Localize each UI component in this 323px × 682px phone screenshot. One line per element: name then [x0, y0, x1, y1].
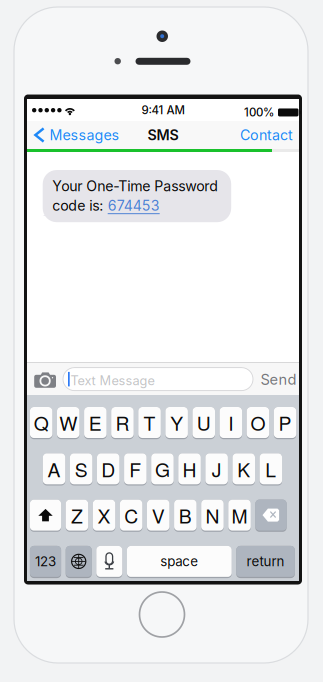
staticText: H — [183, 455, 197, 483]
button[interactable]: Messages — [27, 121, 125, 149]
staticText: C — [124, 501, 138, 529]
button[interactable]: Z — [66, 500, 88, 532]
button[interactable]: Y — [165, 407, 188, 439]
button[interactable]: S — [70, 453, 92, 485]
staticText: D — [101, 455, 115, 483]
button[interactable]: H — [178, 453, 201, 485]
staticText: F — [129, 455, 141, 483]
button[interactable]: B — [174, 500, 197, 532]
button[interactable]: V — [147, 500, 169, 532]
staticText: R — [115, 409, 129, 436]
staticText: X — [97, 501, 110, 529]
button[interactable]: E — [84, 407, 107, 439]
button[interactable]: U — [192, 407, 215, 439]
button[interactable]: Send — [256, 368, 302, 390]
button[interactable]: 674453 — [108, 197, 160, 214]
button[interactable]: K — [232, 453, 255, 485]
staticText: A — [47, 455, 60, 483]
staticText: G — [155, 455, 170, 483]
staticText: 9:41 AM — [141, 103, 184, 117]
staticText: B — [179, 501, 192, 529]
staticText: SMS — [147, 126, 178, 144]
staticText: Send — [261, 371, 297, 388]
button[interactable]: Delete — [255, 500, 287, 532]
staticText: E — [89, 409, 102, 436]
staticText: N — [205, 501, 219, 529]
staticText: M — [231, 501, 247, 529]
button[interactable]: J — [205, 453, 228, 485]
button[interactable]: Contact — [234, 121, 299, 149]
staticText: J — [212, 455, 222, 483]
button[interactable]: return — [236, 546, 295, 578]
staticText: V — [152, 501, 165, 529]
button[interactable]: O — [247, 407, 269, 439]
staticText: 123 — [35, 553, 56, 569]
staticText: S — [75, 455, 88, 483]
button[interactable]: M — [228, 500, 251, 532]
staticText: return — [247, 553, 285, 569]
staticText: Your One-Time Password — [52, 177, 218, 195]
button[interactable]: P — [274, 407, 296, 439]
button[interactable]: N — [201, 500, 224, 532]
staticText: Q — [34, 409, 49, 436]
staticText: Contact — [240, 126, 293, 144]
button[interactable]: D — [97, 453, 119, 485]
staticText: K — [237, 455, 250, 483]
button[interactable]: G — [151, 453, 174, 485]
staticText: 100% — [244, 105, 274, 119]
staticText: space — [160, 553, 198, 569]
staticText: Y — [170, 409, 183, 436]
staticText: I — [228, 409, 233, 436]
button[interactable]: Shift — [30, 500, 61, 532]
button[interactable]: C — [120, 500, 142, 532]
button[interactable]: Dictation — [96, 546, 122, 578]
button[interactable]: F — [124, 453, 147, 485]
button[interactable]: Q — [30, 407, 52, 439]
button[interactable]: I — [220, 407, 242, 439]
staticText: Text Message — [71, 373, 155, 388]
button[interactable]: R — [111, 407, 134, 439]
button[interactable]: space — [127, 546, 232, 578]
staticText: O — [250, 409, 265, 436]
staticText: Z — [71, 501, 83, 529]
button[interactable]: T — [138, 407, 161, 439]
staticText: P — [278, 409, 291, 436]
staticText: 674453 — [108, 197, 160, 214]
staticText: U — [197, 409, 211, 436]
button[interactable]: A — [43, 453, 65, 485]
button[interactable]: 123 — [30, 546, 61, 578]
button[interactable]: L — [260, 453, 282, 485]
staticText: W — [59, 409, 77, 436]
button[interactable]: X — [93, 500, 115, 532]
staticText: T — [144, 409, 156, 436]
button[interactable]: W — [57, 407, 79, 439]
button[interactable]: Camera — [34, 372, 56, 388]
button[interactable]: Next keyboard — [66, 546, 92, 578]
staticText: Messages — [49, 126, 119, 144]
staticText: code is: — [52, 197, 103, 214]
staticText: L — [265, 455, 276, 483]
